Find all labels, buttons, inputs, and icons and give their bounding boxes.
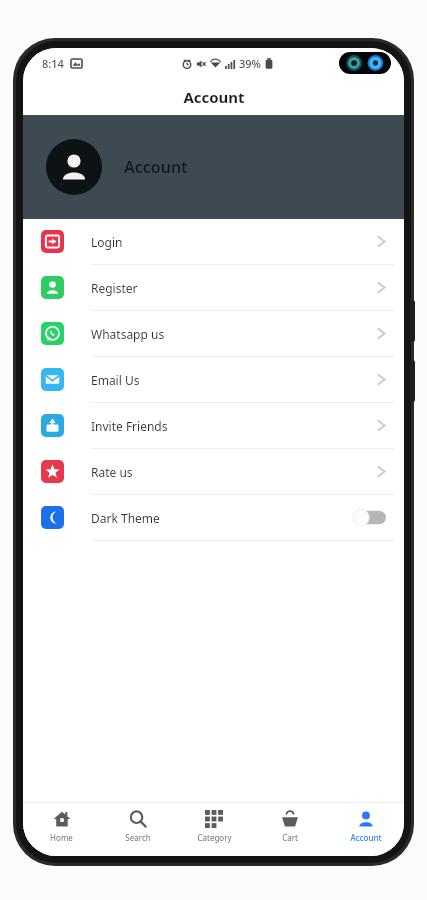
button[interactable]: Dark Theme — [23, 495, 404, 540]
button[interactable]: Cart — [252, 802, 328, 856]
button[interactable]: Rate us — [23, 449, 404, 494]
button[interactable]: Account — [23, 115, 404, 219]
button[interactable]: Search — [100, 802, 176, 856]
button[interactable]: Whatsapp us — [23, 311, 404, 356]
button[interactable]: Login — [23, 219, 404, 264]
staticText: Email Us — [91, 372, 377, 388]
button[interactable]: Register — [23, 265, 404, 310]
button[interactable]: Dark Theme toggle — [352, 509, 386, 526]
staticText: Dark Theme — [91, 510, 352, 526]
button[interactable]: Invite Friends — [23, 403, 404, 448]
staticText: 8:14 — [42, 56, 64, 71]
button[interactable]: Email Us — [23, 357, 404, 402]
button[interactable]: Account — [328, 802, 404, 856]
staticText: Cart — [282, 832, 298, 843]
staticText: Account — [124, 156, 188, 178]
button[interactable]: Home — [23, 802, 100, 856]
staticText: Whatsapp us — [91, 326, 377, 342]
staticText: Category — [197, 832, 232, 843]
staticText: Invite Friends — [91, 418, 377, 434]
button[interactable]: Category — [176, 802, 252, 856]
staticText: Account — [350, 832, 382, 843]
staticText: Search — [125, 832, 151, 843]
staticText: Account — [183, 87, 245, 107]
staticText: Home — [50, 832, 73, 843]
staticText: 39% — [239, 56, 261, 71]
staticText: Rate us — [91, 464, 377, 480]
staticText: Login — [91, 234, 377, 250]
staticText: Register — [91, 280, 377, 296]
